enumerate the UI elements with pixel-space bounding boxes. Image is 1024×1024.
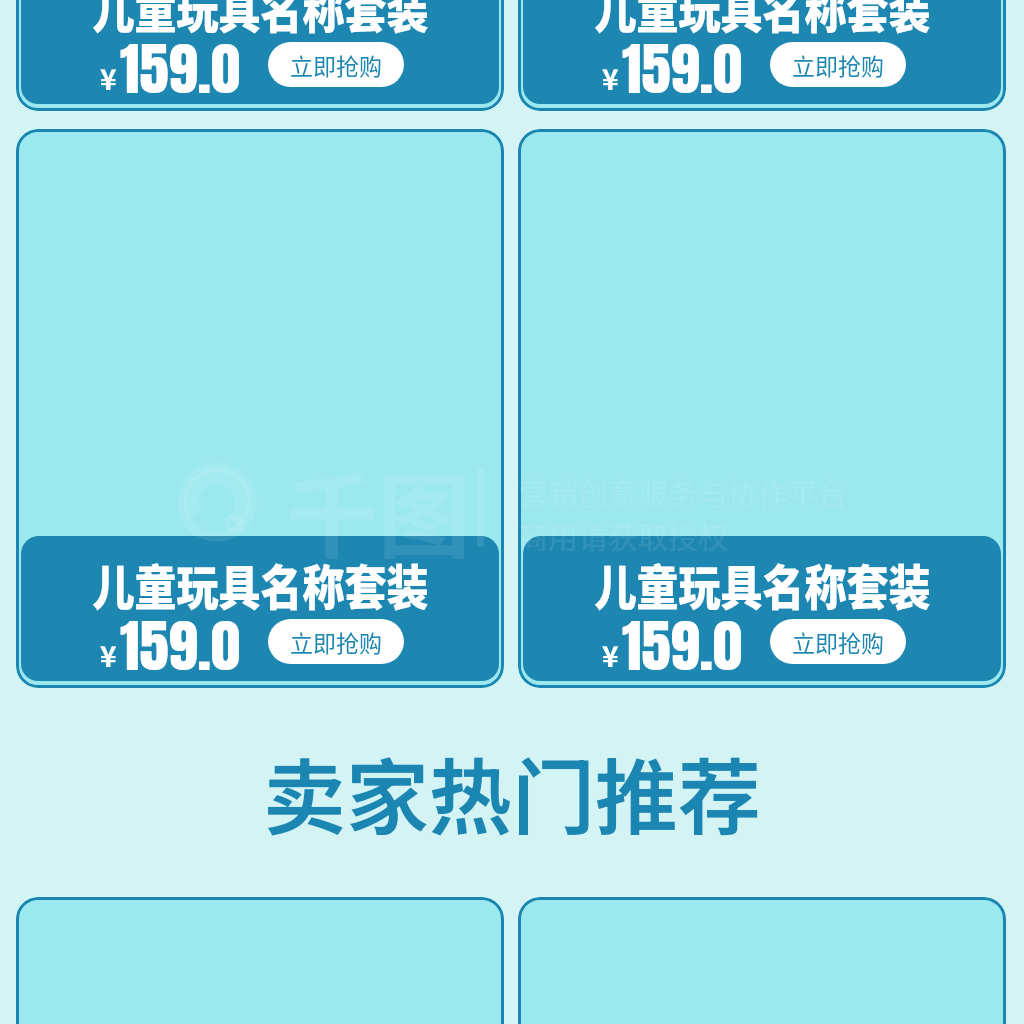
button[interactable]: 儿童玩具名称套装 商品 [518,0,1006,111]
staticText: ¥ [602,635,619,676]
button[interactable]: 立即抢购 [268,42,404,87]
button[interactable]: 儿童玩具名称套装 商品 [16,129,504,688]
button[interactable]: 儿童玩具名称套装 商品 [518,129,1006,688]
button[interactable]: 立即抢购 [770,42,906,87]
staticText: 商用请获取授权 [518,513,728,556]
staticText: 159.0 [120,604,241,674]
button[interactable]: 儿童玩具名称套装 商品 [16,0,504,111]
staticText: 儿童玩具名称套装 [594,0,931,41]
staticText: 儿童玩具名称套装 [92,549,429,618]
staticText: 159.0 [120,27,241,97]
staticText: ¥ [100,635,117,676]
button[interactable]: 推荐商品 1 [16,897,504,1024]
staticText: 立即抢购 [792,48,884,81]
staticText: 儿童玩具名称套装 [594,549,931,618]
staticText: 立即抢购 [290,48,382,81]
staticText: ¥ [100,58,117,99]
staticText: 立即抢购 [290,625,382,658]
button[interactable]: 立即抢购 [770,619,906,664]
staticText: ¥ [602,58,619,99]
staticText: 立即抢购 [792,625,884,658]
staticText: 千图 [286,443,471,576]
staticText: 营销创意服务与协作平台 [518,470,848,513]
button[interactable]: 推荐商品 2 [518,897,1006,1024]
staticText: 159.0 [622,604,743,674]
staticText: 卖家热门推荐 [263,732,761,852]
button[interactable]: 立即抢购 [268,619,404,664]
staticText: 159.0 [622,27,743,97]
staticText: 儿童玩具名称套装 [92,0,429,41]
